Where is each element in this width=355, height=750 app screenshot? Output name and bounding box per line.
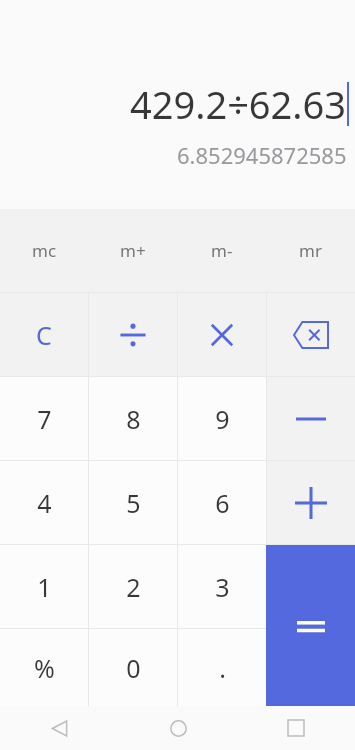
- button[interactable]: Multiply: [178, 293, 266, 376]
- button[interactable]: Recents: [237, 706, 355, 750]
- button[interactable]: 7: [0, 377, 88, 460]
- button[interactable]: 2: [89, 545, 177, 628]
- staticText: m-: [211, 239, 233, 262]
- staticText: 6.852945872585: [177, 140, 347, 170]
- staticText: 1: [37, 570, 52, 604]
- button[interactable]: Back: [0, 706, 119, 750]
- button[interactable]: Home: [119, 706, 237, 750]
- button[interactable]: 0: [89, 629, 177, 706]
- staticText: m+: [120, 239, 146, 262]
- button[interactable]: 1: [0, 545, 88, 628]
- button[interactable]: %: [0, 629, 88, 706]
- button[interactable]: 8: [89, 377, 177, 460]
- button[interactable]: 5: [89, 461, 177, 544]
- staticText: 429.2÷62.63: [130, 78, 346, 130]
- staticText: mr: [299, 239, 322, 262]
- staticText: 8: [126, 402, 141, 436]
- staticText: 9: [215, 402, 230, 436]
- staticText: 0: [126, 651, 141, 685]
- staticText: 7: [37, 402, 52, 436]
- button[interactable]: mr: [266, 209, 355, 292]
- staticText: 3: [215, 570, 230, 604]
- button[interactable]: mc: [0, 209, 88, 292]
- button[interactable]: .: [178, 629, 266, 706]
- button[interactable]: Equals: [266, 545, 355, 706]
- staticText: 2: [126, 570, 141, 604]
- button[interactable]: Divide: [89, 293, 177, 376]
- button[interactable]: 6: [178, 461, 266, 544]
- button[interactable]: Minus: [267, 377, 355, 460]
- staticText: 5: [126, 486, 141, 520]
- staticText: C: [36, 318, 52, 352]
- button[interactable]: m-: [177, 209, 266, 292]
- staticText: mc: [32, 239, 57, 262]
- button[interactable]: Backspace: [267, 293, 355, 376]
- button[interactable]: C: [0, 293, 88, 376]
- staticText: .: [219, 651, 226, 685]
- button[interactable]: 4: [0, 461, 88, 544]
- staticText: 6: [215, 486, 230, 520]
- staticText: 4: [37, 486, 52, 520]
- button[interactable]: Plus: [267, 461, 355, 544]
- button[interactable]: 3: [178, 545, 266, 628]
- button[interactable]: m+: [88, 209, 177, 292]
- button[interactable]: 9: [178, 377, 266, 460]
- staticText: %: [34, 651, 55, 685]
